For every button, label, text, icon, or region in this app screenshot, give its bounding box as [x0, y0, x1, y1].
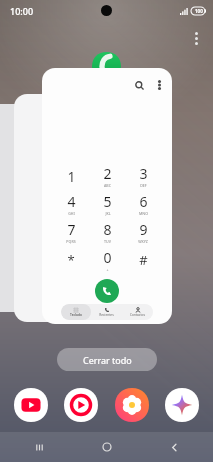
staticText: Recientes [99, 313, 114, 317]
staticText: 5 [103, 192, 112, 211]
button[interactable]: 1 [56, 162, 86, 190]
staticText: Teclado [70, 313, 82, 317]
button[interactable]: Cerrar todo [57, 348, 157, 371]
button[interactable]: Back [159, 432, 189, 462]
button[interactable] [0, 104, 84, 312]
button[interactable]: 3 [128, 162, 158, 190]
button[interactable]: 4 [56, 190, 86, 218]
button[interactable]: More options [186, 28, 206, 48]
staticText: JKL [105, 211, 111, 216]
staticText: 10:00 [10, 5, 34, 17]
button[interactable]: # [128, 246, 158, 274]
staticText: * [67, 251, 75, 269]
staticText: Cerrar todo [83, 354, 132, 366]
other: Phone app [92, 52, 121, 81]
staticText: PQRS [66, 239, 76, 244]
staticText: WXYZ [138, 239, 148, 244]
button[interactable]: YouTube [14, 388, 48, 422]
button[interactable]: Search [42, 68, 172, 324]
button[interactable]: 6 [128, 190, 158, 218]
staticText: GHI [68, 211, 75, 216]
button[interactable]: Home [92, 432, 122, 462]
staticText: 4 [67, 192, 76, 211]
button[interactable]: Recientes [91, 304, 122, 320]
staticText: ABC [104, 183, 111, 188]
staticText: # [139, 251, 148, 269]
button[interactable]: Contactos [122, 304, 153, 320]
button[interactable]: 8 [92, 218, 122, 246]
button[interactable]: * [56, 246, 86, 274]
button[interactable]: Recents [24, 432, 54, 462]
button[interactable]: Me [14, 94, 134, 322]
staticText: 9 [139, 220, 148, 239]
staticText: DEF [140, 183, 147, 188]
button[interactable]: Search [130, 76, 148, 94]
staticText: MNO [139, 211, 148, 216]
button[interactable]: 9 [128, 218, 158, 246]
button[interactable]: 0 [92, 246, 122, 274]
staticText: 100 [195, 8, 203, 14]
staticText: Contactos [130, 313, 145, 317]
button[interactable]: 2 [92, 162, 122, 190]
staticText: 1 [67, 167, 76, 186]
staticText: 7 [67, 220, 76, 239]
button[interactable]: Gemini [165, 388, 199, 422]
button[interactable]: More options [150, 76, 168, 94]
staticText: 8 [103, 220, 112, 239]
button[interactable]: Teclado [61, 304, 91, 320]
button[interactable]: YouTube Music [64, 388, 98, 422]
staticText: 0 [103, 248, 112, 267]
staticText: 3 [139, 164, 148, 183]
button[interactable]: Gallery [115, 388, 149, 422]
button[interactable]: 7 [56, 218, 86, 246]
button[interactable]: Call [95, 279, 119, 303]
staticText: + [106, 267, 109, 272]
staticText: TUV [104, 239, 111, 244]
button[interactable]: 5 [92, 190, 122, 218]
staticText: 6 [139, 192, 148, 211]
staticText: 2 [103, 164, 112, 183]
